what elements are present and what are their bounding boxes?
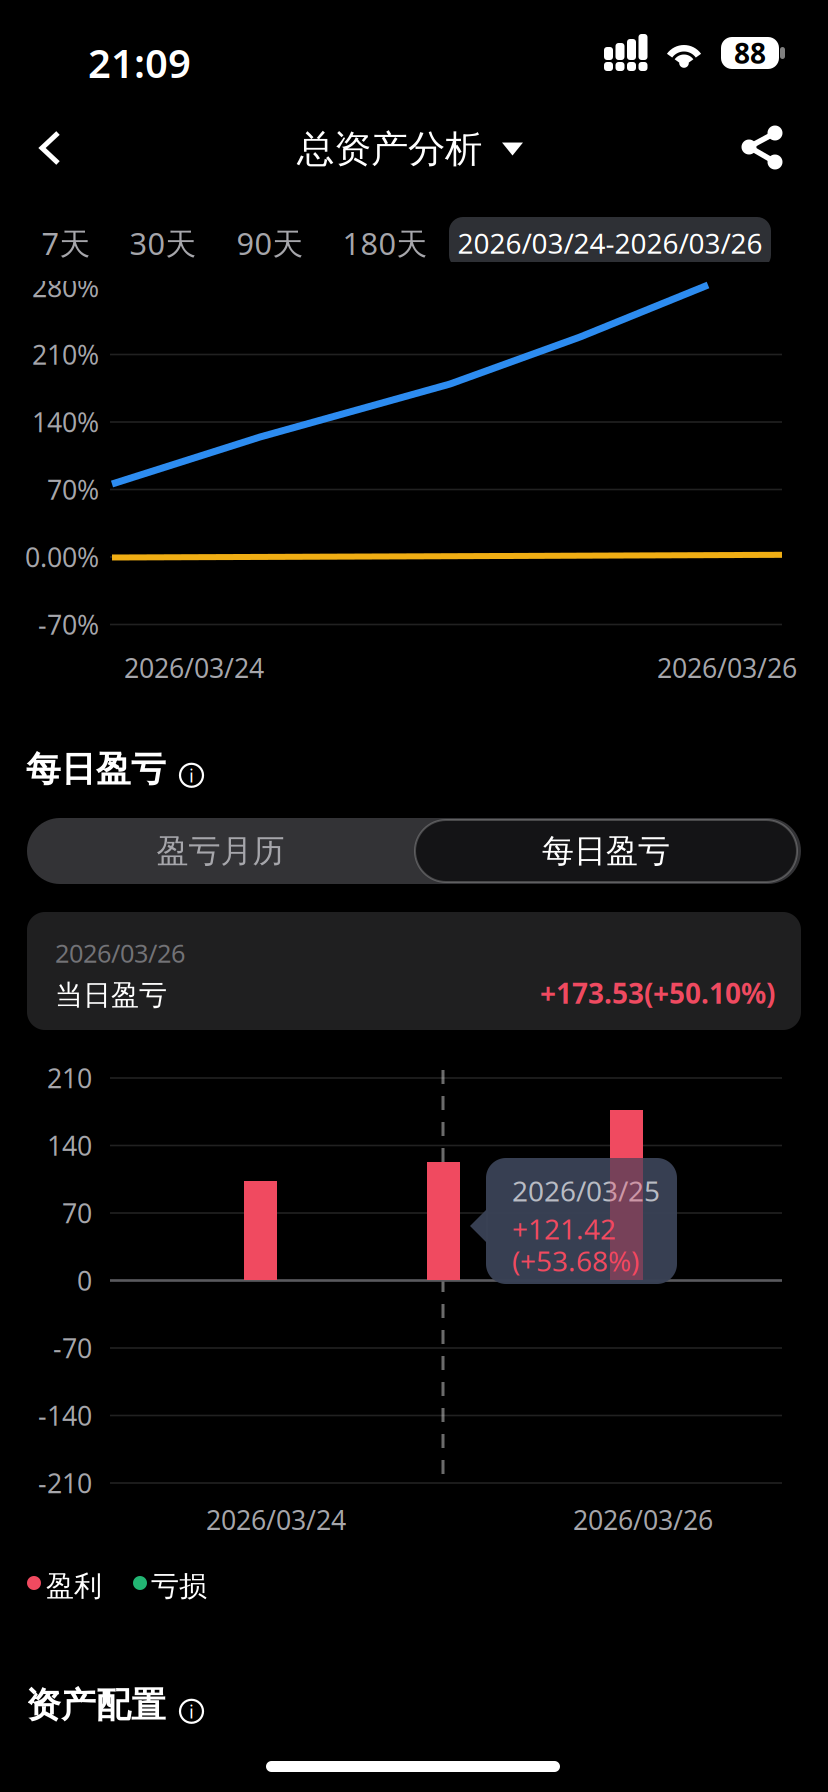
staticText: 0.00% (25, 539, 99, 575)
staticText: +121.42 (512, 1210, 616, 1247)
staticText: 21:09 (88, 36, 191, 89)
staticText: i (189, 763, 194, 788)
button[interactable]: Share (712, 108, 796, 188)
button[interactable]: 每日盈亏 (415, 820, 797, 882)
staticText: 90天 (236, 223, 303, 263)
staticText: 资产配置 (26, 1684, 166, 1727)
staticText: 2026/03/26 (573, 1502, 713, 1537)
button[interactable]: 总资产分析 (297, 125, 523, 173)
staticText: 每日盈亏 (26, 748, 166, 791)
staticText: 当日盈亏 (55, 978, 167, 1012)
staticText: 每日盈亏 (542, 831, 670, 871)
staticText: (+53.68%) (512, 1242, 639, 1279)
staticText: 70% (47, 472, 99, 507)
staticText: 亏损 (151, 1569, 207, 1603)
staticText: 88 (734, 34, 766, 72)
staticText: 2026/03/24 (124, 650, 264, 685)
staticText: 2026/03/26 (55, 936, 185, 970)
staticText: 7天 (41, 223, 90, 263)
staticText: 2026/03/24-2026/03/26 (457, 224, 762, 262)
staticText: -140 (38, 1398, 92, 1433)
staticText: -210 (38, 1465, 92, 1501)
staticText: i (189, 1699, 194, 1724)
staticText: 180天 (342, 223, 427, 263)
staticText: 0 (77, 1263, 92, 1298)
staticText: 140 (47, 1128, 92, 1163)
button[interactable]: 7天 (22, 215, 110, 271)
staticText: 2026/03/25 (512, 1172, 660, 1209)
staticText: 盈利 (46, 1569, 102, 1603)
staticText: -70 (53, 1330, 92, 1366)
button[interactable]: 30天 (113, 215, 213, 271)
button[interactable]: 盈亏月历 (27, 818, 414, 884)
staticText: 总资产分析 (297, 126, 482, 172)
staticText: 210 (47, 1060, 92, 1096)
staticText: 280% (32, 269, 99, 305)
staticText: 210% (32, 337, 99, 372)
button[interactable]: Back (8, 110, 84, 186)
staticText: +173.53(+50.10%) (540, 974, 775, 1012)
staticText: 2026/03/26 (657, 650, 797, 685)
staticText: -70% (38, 607, 99, 642)
button[interactable]: 90天 (220, 215, 320, 271)
staticText: 30天 (129, 223, 196, 263)
button[interactable]: 180天 (328, 215, 442, 271)
staticText: 2026/03/24 (206, 1502, 346, 1537)
staticText: 盈亏月历 (156, 831, 284, 871)
staticText: 140% (32, 404, 99, 440)
staticText: 70 (62, 1195, 92, 1231)
button[interactable]: 2026/03/24-2026/03/26 (449, 217, 771, 269)
